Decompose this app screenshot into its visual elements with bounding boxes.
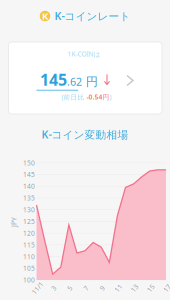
staticText: 13 bbox=[131, 284, 139, 292]
staticText: K-コインレート bbox=[54, 9, 130, 23]
staticText: 150 bbox=[23, 158, 35, 167]
staticText: 130 bbox=[23, 205, 35, 214]
staticText: 15 bbox=[147, 284, 155, 292]
staticText: 11/1 bbox=[30, 284, 44, 292]
staticText: K-コイン変動相場 bbox=[41, 127, 128, 142]
staticText: 115 bbox=[23, 240, 35, 249]
staticText: 3 bbox=[52, 284, 56, 292]
staticText: 5 bbox=[68, 284, 72, 292]
staticText: K bbox=[42, 10, 48, 22]
staticText: 100 bbox=[23, 276, 35, 284]
staticText: 7 bbox=[84, 284, 88, 292]
staticText: 135 bbox=[23, 193, 35, 202]
staticText: 105 bbox=[23, 264, 35, 273]
staticText: 140 bbox=[23, 182, 35, 191]
staticText: 円 bbox=[82, 74, 98, 89]
staticText: (前日比 bbox=[61, 93, 86, 101]
staticText: .62 bbox=[67, 74, 82, 89]
staticText: 145 bbox=[23, 170, 35, 179]
staticText: -0.54円 bbox=[86, 93, 109, 101]
staticText: 110 bbox=[23, 252, 35, 261]
staticText: 1K-COINは bbox=[67, 50, 100, 58]
staticText: JPY bbox=[9, 218, 19, 226]
staticText: 17 bbox=[163, 284, 170, 292]
staticText: 125 bbox=[23, 217, 35, 226]
staticText: 145 bbox=[40, 69, 67, 90]
staticText: 120 bbox=[23, 229, 35, 238]
staticText: 9 bbox=[100, 284, 104, 292]
staticText: ) bbox=[109, 93, 111, 101]
button[interactable]: 1K-COINは bbox=[0, 0, 170, 300]
staticText: 11 bbox=[114, 284, 122, 292]
